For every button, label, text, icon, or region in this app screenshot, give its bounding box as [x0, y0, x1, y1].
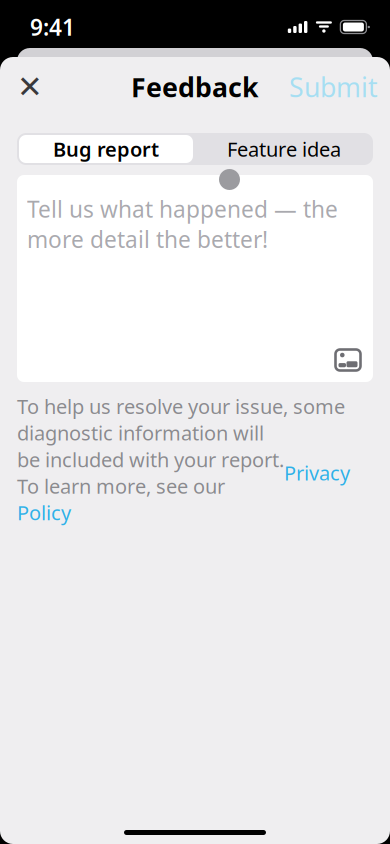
staticText: Submit — [289, 69, 378, 105]
staticText: Feedback — [131, 69, 259, 105]
button[interactable]: Close — [7, 64, 53, 110]
button[interactable]: Policy — [17, 499, 71, 526]
staticText: Bug report — [53, 136, 159, 162]
staticText: Tell us what happened — the more detail … — [27, 194, 338, 254]
staticText: Feature idea — [227, 136, 341, 162]
staticText: Policy — [17, 499, 71, 526]
staticText: ✕ — [17, 70, 43, 104]
button[interactable]: Attach photo — [329, 341, 367, 379]
button[interactable]: Submit — [289, 64, 378, 110]
staticText: Privacy — [284, 459, 350, 486]
button[interactable]: Privacy — [284, 459, 350, 486]
staticText: be included with your report. To learn m… — [17, 446, 284, 499]
button[interactable]: Feature idea — [195, 133, 373, 165]
button[interactable]: Bug report — [17, 133, 195, 165]
staticText: 9:41 — [30, 12, 75, 42]
staticText: To help us resolve your issue, some diag… — [17, 393, 345, 446]
